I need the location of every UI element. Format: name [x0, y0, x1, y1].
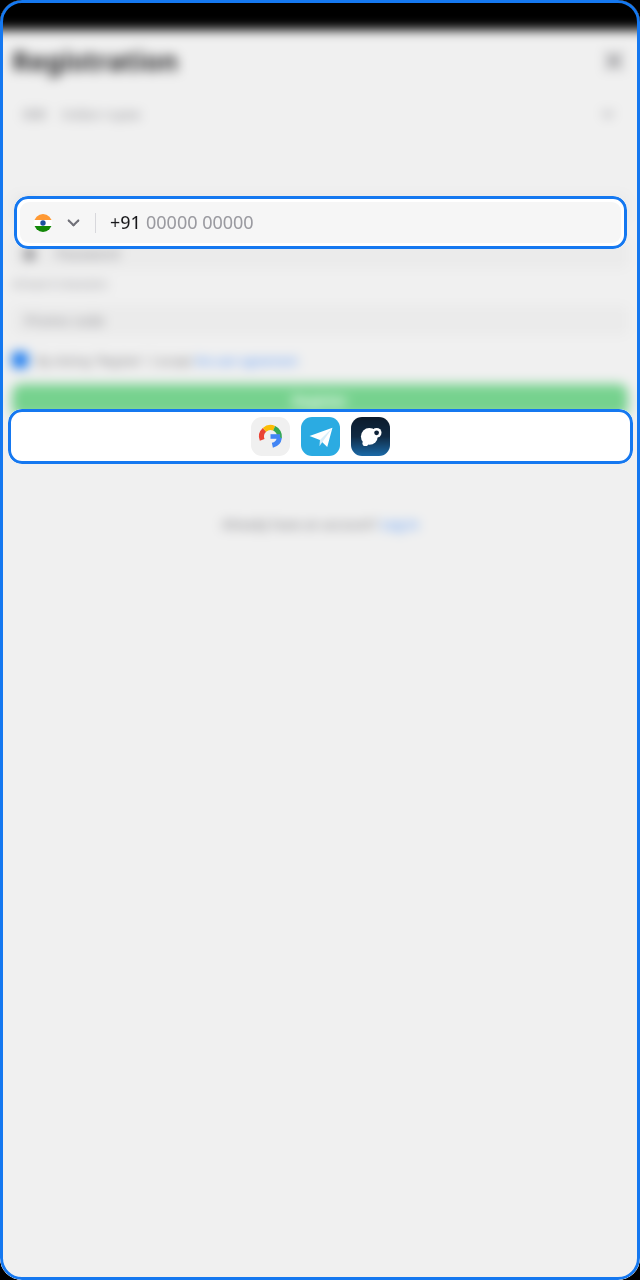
- staticText: Registration: [12, 42, 179, 79]
- button[interactable]: Log in: [381, 515, 419, 533]
- button[interactable]: Sign in with Telegram: [301, 417, 340, 456]
- staticText: Password: [56, 244, 120, 263]
- button[interactable]: Sign in with Google: [251, 417, 290, 456]
- staticText: Already have an account?: [222, 515, 381, 533]
- staticText: Register: [292, 391, 348, 410]
- staticText: INR: [23, 105, 46, 123]
- button[interactable]: Register: [12, 384, 628, 417]
- button[interactable]: By clicking "Register", I accept: [12, 352, 628, 368]
- staticText: Indian rupee: [62, 105, 141, 123]
- staticText: +91: [110, 210, 141, 235]
- staticText: the user agreement: [195, 353, 298, 368]
- staticText: or: [315, 433, 326, 447]
- button[interactable]: INR: [11, 97, 629, 131]
- button[interactable]: Email: [11, 193, 629, 224]
- button[interactable]: Password: [11, 238, 629, 269]
- button[interactable]: Close: [600, 47, 628, 75]
- staticText: Email: [56, 199, 92, 218]
- staticText: Promo code: [25, 311, 105, 330]
- button[interactable]: +91: [20, 202, 621, 243]
- staticText: By clicking "Register", I accept: [37, 353, 195, 368]
- button[interactable]: Promo code: [11, 305, 629, 336]
- button[interactable]: Sign in with Steam: [351, 417, 390, 456]
- staticText: 00000 00000: [146, 210, 254, 235]
